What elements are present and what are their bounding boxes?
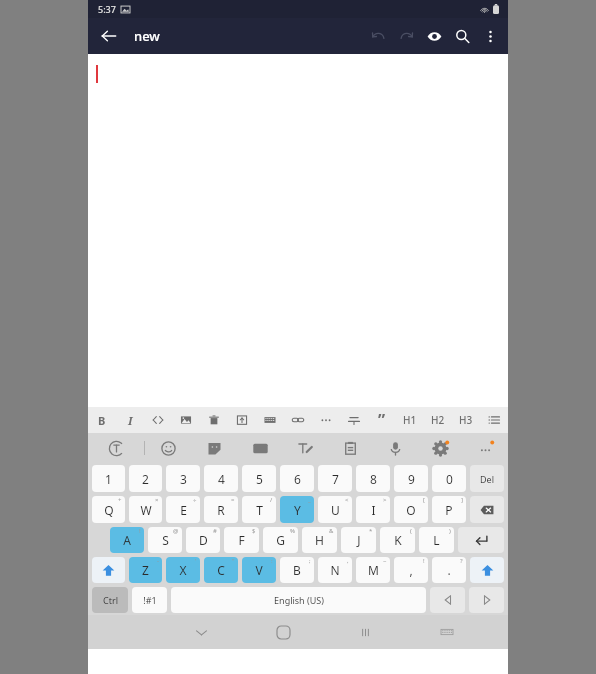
staticText: 3	[180, 471, 187, 487]
button[interactable]: E	[166, 496, 200, 523]
button[interactable]: M	[356, 557, 390, 583]
button[interactable]: Redo	[392, 22, 420, 50]
staticText: (	[410, 527, 412, 535]
staticText: !	[139, 527, 141, 535]
button[interactable]: 5	[242, 465, 276, 492]
button[interactable]: code	[144, 407, 172, 433]
button[interactable]: F	[224, 527, 259, 553]
button[interactable]: V	[242, 557, 276, 583]
button[interactable]: export	[228, 407, 256, 433]
button[interactable]: S	[148, 527, 182, 553]
button[interactable]: .	[432, 557, 466, 583]
button[interactable]: B	[88, 407, 116, 433]
button[interactable]: Home	[242, 615, 324, 649]
staticText: ÷	[193, 496, 197, 504]
button[interactable]: H3	[452, 407, 480, 433]
button[interactable]: bksp	[470, 496, 504, 523]
button[interactable]: hr	[340, 407, 368, 433]
button[interactable]: shift	[470, 557, 504, 583]
button[interactable]: Recents	[324, 615, 406, 649]
button[interactable]: More options	[476, 22, 504, 50]
button[interactable]: shift	[92, 557, 125, 583]
button[interactable]: more	[463, 433, 508, 463]
button[interactable]: Del	[470, 465, 504, 492]
button[interactable]: N	[318, 557, 352, 583]
button[interactable]: U	[318, 496, 352, 523]
button[interactable]: 4	[204, 465, 238, 492]
button[interactable]: X	[166, 557, 200, 583]
button[interactable]: !#1	[132, 587, 167, 613]
button[interactable]: J	[341, 527, 376, 553]
staticText: W	[140, 502, 152, 518]
button[interactable]: Q	[92, 496, 125, 523]
button[interactable]: T	[242, 496, 276, 523]
button[interactable]: W	[129, 496, 162, 523]
button[interactable]: list	[480, 407, 508, 433]
button[interactable]: Z	[129, 557, 162, 583]
button[interactable]: Hide keyboard	[160, 615, 242, 649]
staticText: .	[447, 562, 451, 578]
button[interactable]: B	[280, 557, 314, 583]
button[interactable]: Ctrl	[92, 587, 128, 613]
button[interactable]: G	[263, 527, 298, 553]
button[interactable]: ,	[394, 557, 428, 583]
button[interactable]: Text tools	[88, 433, 144, 463]
staticText: H1	[403, 413, 417, 427]
button[interactable]: 0	[432, 465, 466, 492]
staticText: 9	[408, 471, 415, 487]
button[interactable]: Undo	[364, 22, 392, 50]
button[interactable]: Search	[448, 22, 476, 50]
button[interactable]: enter	[458, 527, 504, 553]
button[interactable]: gif	[237, 433, 283, 463]
button[interactable]: R	[204, 496, 238, 523]
staticText: N	[330, 562, 340, 578]
button[interactable]: dots	[312, 407, 340, 433]
button[interactable]: Switch keyboard	[406, 615, 488, 649]
button[interactable]: Back	[96, 23, 122, 49]
button[interactable]: left	[430, 587, 465, 613]
staticText: _	[308, 496, 311, 504]
button[interactable]: image	[172, 407, 200, 433]
button[interactable]: I	[356, 496, 390, 523]
button[interactable]: clip	[328, 433, 373, 463]
button[interactable]: kb	[256, 407, 284, 433]
staticText: I	[371, 502, 376, 518]
button[interactable]: right	[469, 587, 504, 613]
staticText: X	[179, 562, 187, 578]
button[interactable]: gear	[418, 433, 463, 463]
staticText: G	[276, 532, 285, 548]
button[interactable]: H	[302, 527, 337, 553]
staticText: B	[98, 413, 106, 428]
button[interactable]: link	[284, 407, 312, 433]
staticText: D	[199, 532, 208, 548]
button[interactable]: Y	[280, 496, 314, 523]
button[interactable]: tpen	[283, 433, 328, 463]
button[interactable]: C	[204, 557, 238, 583]
button[interactable]: L	[419, 527, 454, 553]
button[interactable]: P	[432, 496, 466, 523]
staticText: !#1	[143, 594, 157, 606]
button[interactable]: emoji	[145, 433, 191, 463]
button[interactable]: mic	[373, 433, 418, 463]
button[interactable]: Preview	[420, 22, 448, 50]
button[interactable]: I	[116, 407, 144, 433]
button[interactable]: 9	[394, 465, 428, 492]
staticText: 4	[218, 471, 225, 487]
button[interactable]: A	[110, 527, 144, 553]
button[interactable]: 1	[92, 465, 125, 492]
button[interactable]: O	[394, 496, 428, 523]
button[interactable]: D	[186, 527, 220, 553]
button[interactable]: H2	[424, 407, 452, 433]
button[interactable]: 2	[129, 465, 162, 492]
staticText: V	[255, 562, 263, 578]
button[interactable]: H1	[396, 407, 424, 433]
button[interactable]: sticker	[191, 433, 237, 463]
button[interactable]: 6	[280, 465, 314, 492]
button[interactable]: trash	[200, 407, 228, 433]
button[interactable]: quote	[368, 407, 396, 433]
button[interactable]: K	[380, 527, 415, 553]
button[interactable]: 8	[356, 465, 390, 492]
button[interactable]: 7	[318, 465, 352, 492]
button[interactable]: 3	[166, 465, 200, 492]
button[interactable]: English (US)	[171, 587, 426, 613]
